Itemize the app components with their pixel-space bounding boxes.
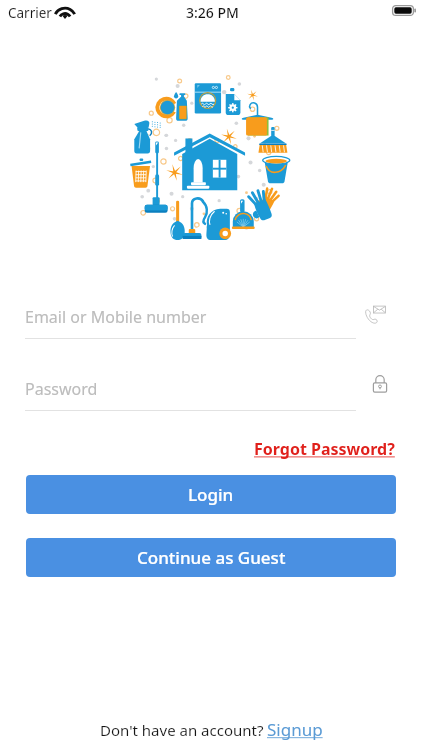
staticText: Signup — [267, 718, 323, 741]
staticText: 3:26 PM — [186, 3, 239, 22]
staticText: Login — [188, 483, 234, 506]
button[interactable]: Signup — [264, 718, 323, 741]
staticText: Password — [25, 378, 98, 400]
staticText: Don't have an account? — [100, 720, 264, 740]
button[interactable]: Password — [369, 373, 391, 395]
staticText: Email or Mobile number — [25, 306, 207, 328]
button[interactable]: Login — [26, 475, 396, 514]
button[interactable]: Continue as Guest — [26, 538, 396, 577]
staticText: Forgot Password? — [254, 438, 395, 460]
button[interactable]: Email or mobile number — [365, 304, 386, 325]
staticText: Continue as Guest — [137, 546, 286, 569]
button[interactable]: Forgot Password? — [254, 438, 395, 460]
staticText: Carrier — [8, 4, 52, 22]
